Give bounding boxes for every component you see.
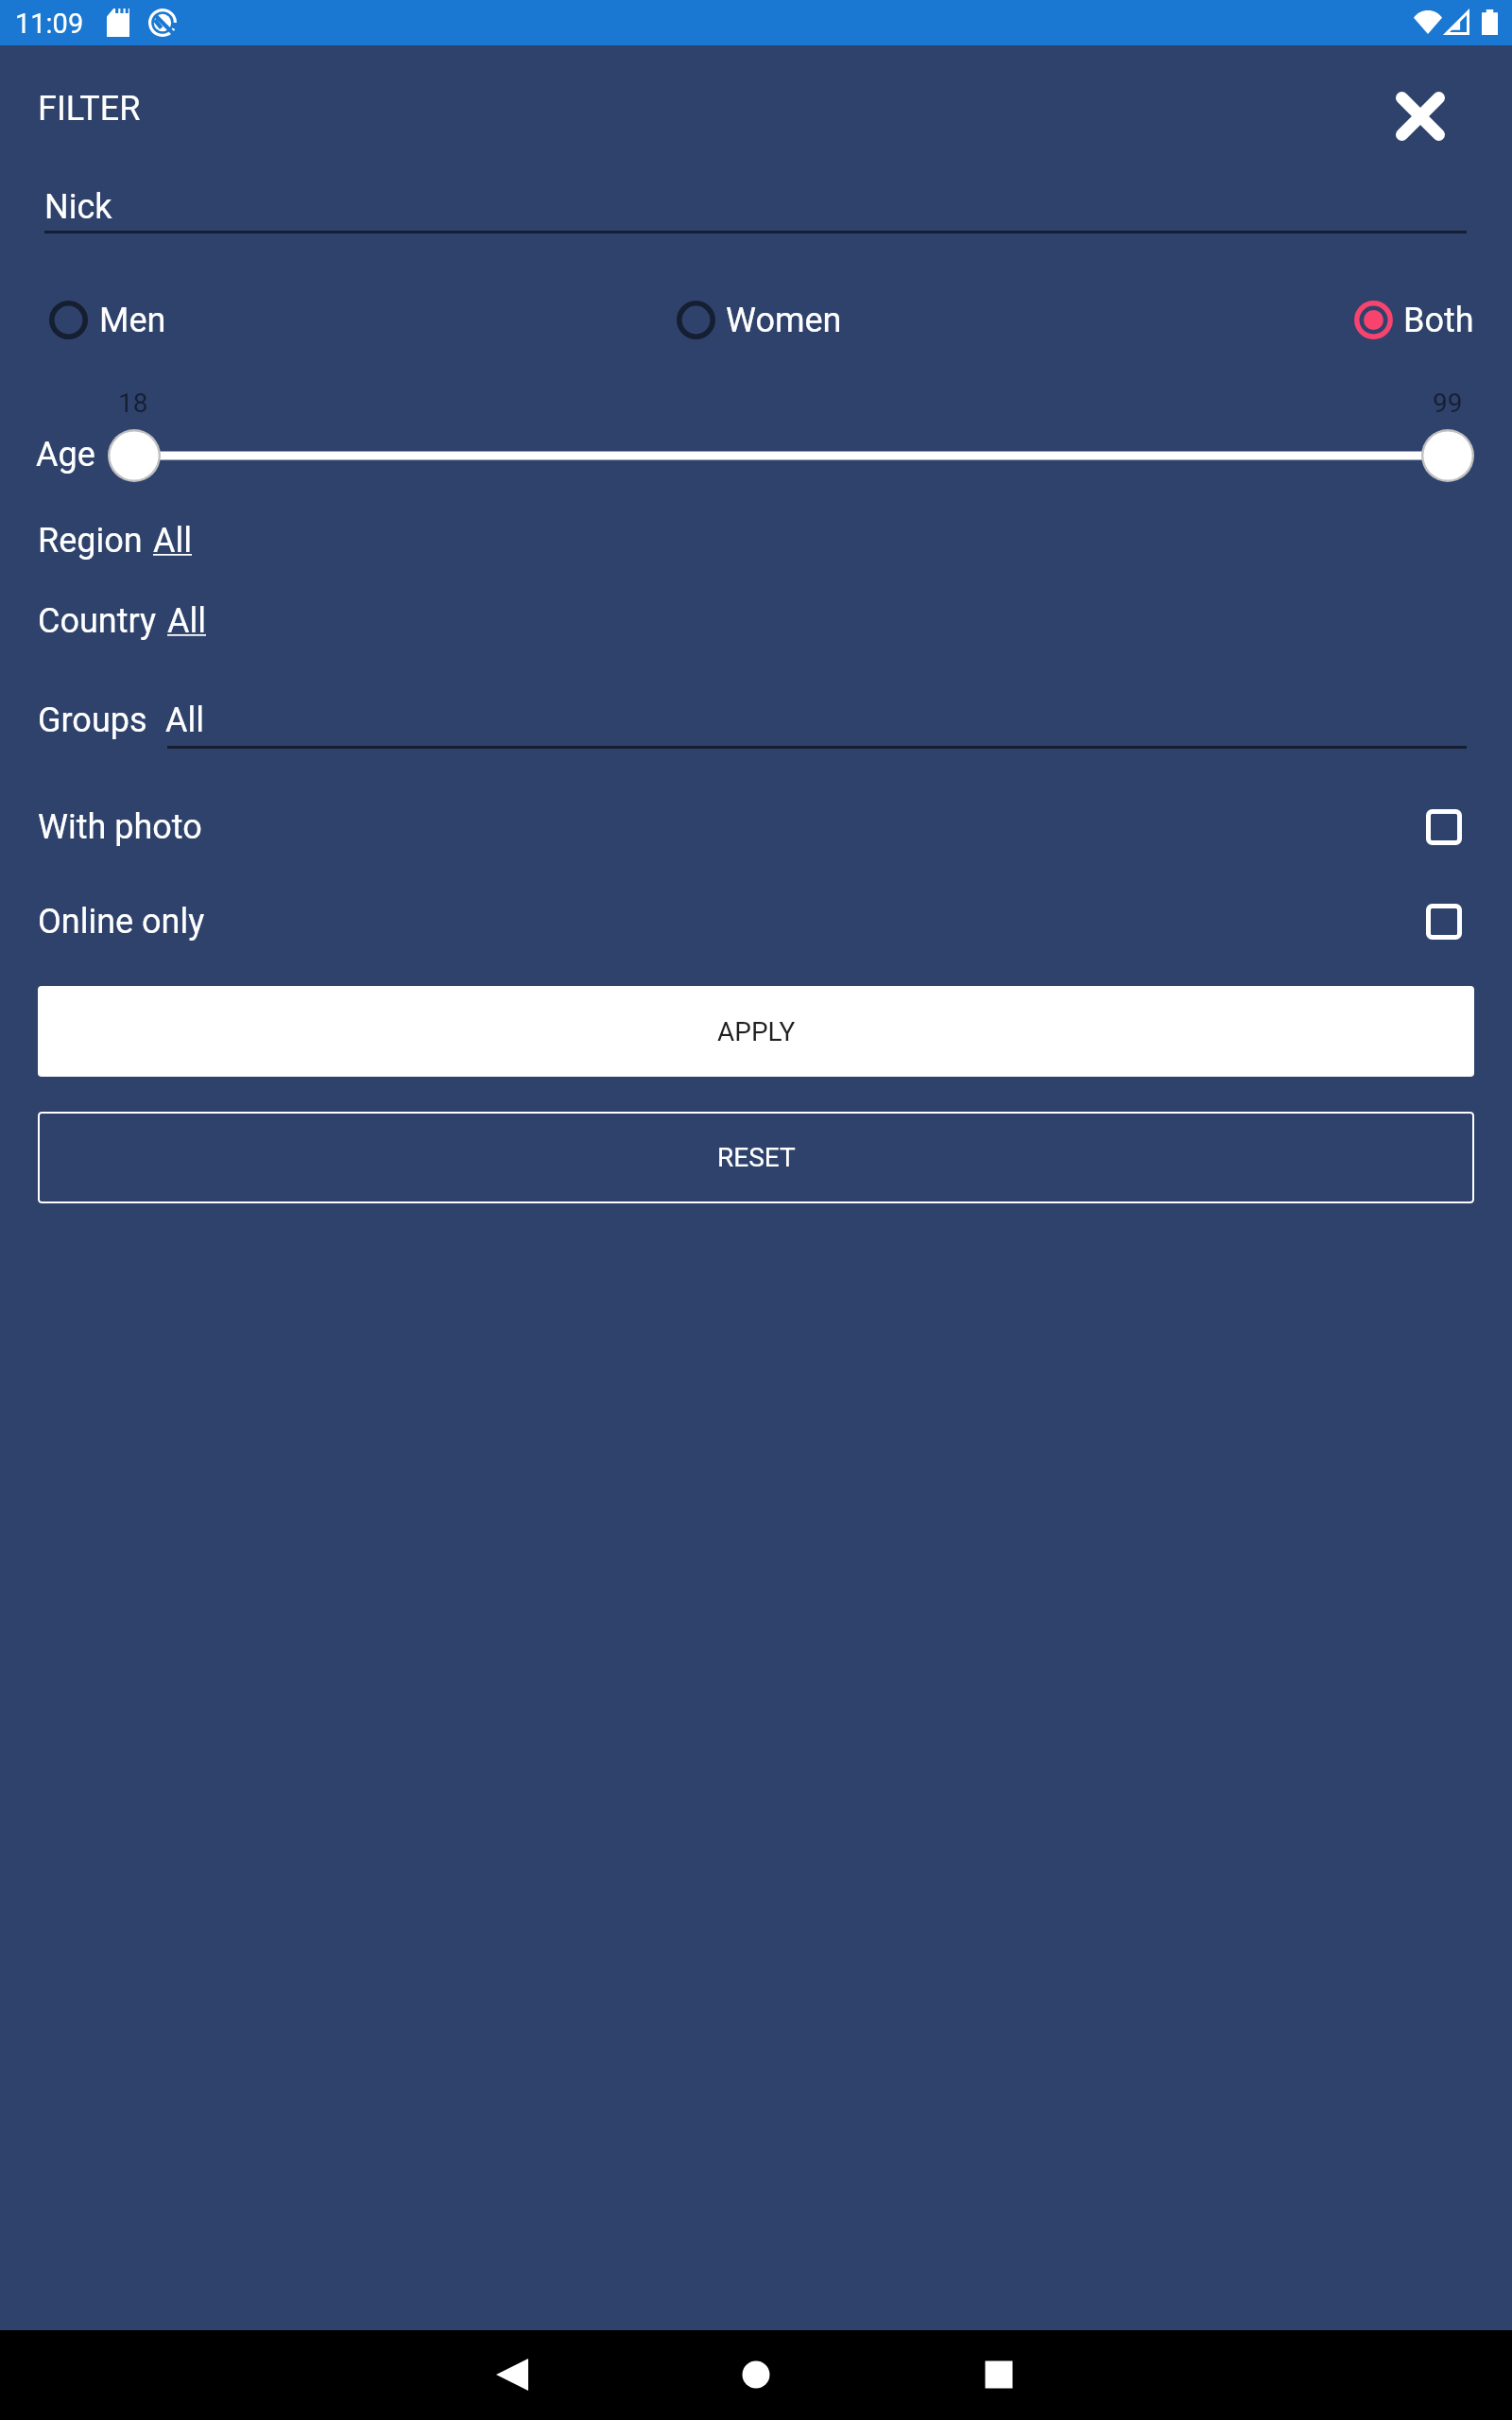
button[interactable]: APPLY — [38, 986, 1474, 1077]
button[interactable]: Online only — [0, 889, 1512, 964]
staticText: All — [165, 700, 204, 740]
staticText: Groups — [38, 700, 147, 740]
staticText: Age — [36, 435, 95, 475]
staticText: APPLY — [717, 1016, 796, 1047]
button[interactable]: Nick — [0, 168, 1512, 246]
staticText: RESET — [717, 1142, 796, 1173]
button[interactable]: Country — [0, 588, 1512, 664]
staticText: With photo — [38, 807, 202, 847]
staticText: Country — [38, 601, 157, 641]
staticText: Region — [38, 521, 143, 561]
button[interactable]: Groups — [0, 687, 1512, 782]
staticText: FILTER — [38, 89, 141, 129]
button[interactable]: Close — [1375, 71, 1466, 162]
button[interactable]: Recents — [965, 2341, 1033, 2409]
button[interactable]: Region — [0, 508, 1512, 583]
staticText: All — [153, 521, 192, 561]
staticText: Online only — [38, 902, 205, 942]
staticText: Nick — [44, 187, 112, 227]
staticText: 99 — [1433, 388, 1463, 419]
staticText: 11:09 — [15, 8, 84, 40]
staticText: Women — [726, 301, 842, 340]
staticText: 18 — [118, 388, 148, 419]
button[interactable]: Home — [722, 2341, 790, 2409]
button[interactable]: With photo — [0, 794, 1512, 870]
button[interactable]: RESET — [38, 1112, 1474, 1203]
button[interactable]: Women — [665, 280, 782, 355]
button[interactable]: Back — [478, 2341, 546, 2409]
staticText: All — [167, 601, 206, 641]
button[interactable]: Both — [1343, 280, 1414, 355]
staticText: Men — [99, 301, 166, 340]
staticText: Both — [1403, 301, 1474, 340]
button[interactable]: Men — [38, 280, 105, 355]
